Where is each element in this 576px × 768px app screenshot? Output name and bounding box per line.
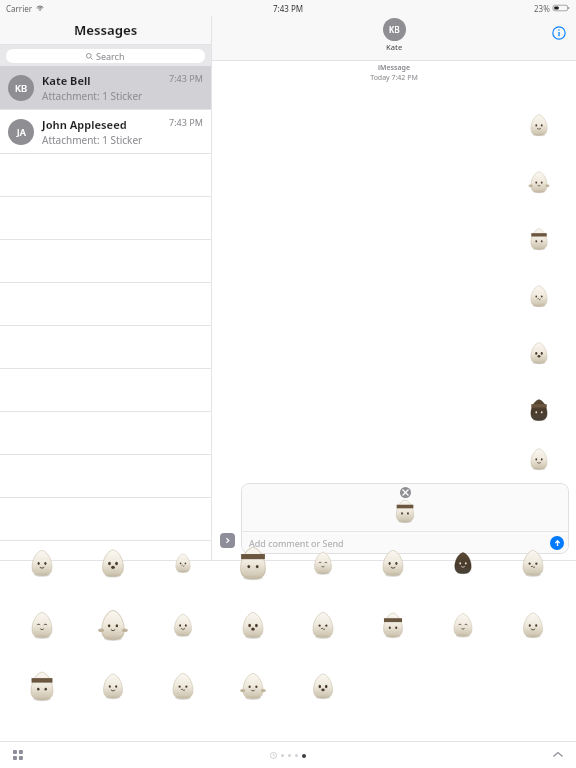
button[interactable]: Add comment or Send	[241, 532, 569, 554]
button[interactable]: Sticker	[235, 668, 271, 704]
button[interactable]: Sticker	[305, 607, 341, 643]
button[interactable]	[0, 455, 211, 498]
button[interactable]	[0, 240, 211, 283]
button[interactable]: KB	[0, 66, 211, 110]
staticText: 7:43 PM	[169, 72, 203, 84]
button[interactable]: Search	[6, 49, 205, 63]
staticText: John Appleseed	[42, 117, 127, 132]
button[interactable]: Sticker	[375, 545, 411, 581]
button[interactable]: Send	[550, 536, 564, 550]
button[interactable]: Remove sticker	[400, 487, 411, 498]
button[interactable]: JA	[0, 110, 211, 154]
staticText: 7:43 PM	[169, 116, 203, 128]
button[interactable]: Sticker	[24, 545, 60, 581]
button[interactable]: Sticker	[305, 668, 341, 704]
button[interactable]: Sticker	[235, 545, 271, 581]
button[interactable]	[0, 326, 211, 369]
button[interactable]	[526, 397, 576, 423]
button[interactable]	[526, 283, 576, 309]
button[interactable]: Sticker	[24, 668, 60, 704]
staticText: 7:43 PM	[273, 3, 304, 14]
staticText: Kate Bell	[42, 73, 91, 88]
staticText: KB	[15, 82, 28, 95]
staticText: 23%	[534, 3, 550, 14]
button[interactable]: Sticker	[515, 545, 551, 581]
staticText: Add comment or Send	[249, 537, 344, 549]
button[interactable]: Details	[550, 24, 568, 42]
staticText: KB	[389, 24, 400, 35]
button[interactable]	[0, 283, 211, 326]
staticText: Attachment: 1 Sticker	[42, 89, 143, 103]
button[interactable]: Sticker	[445, 607, 481, 643]
button[interactable]: KB	[383, 18, 406, 52]
button[interactable]	[0, 369, 211, 412]
staticText: Carrier	[6, 3, 33, 14]
staticText: JA	[17, 126, 26, 139]
button[interactable]	[526, 112, 576, 138]
button[interactable]: Sticker	[305, 545, 341, 581]
button[interactable]: Sticker	[235, 607, 271, 643]
button[interactable]	[526, 446, 576, 472]
button[interactable]: Sticker	[165, 607, 201, 643]
button[interactable]: Sticker	[95, 668, 131, 704]
button[interactable]: Sticker	[95, 607, 131, 643]
button[interactable]: Sticker	[375, 607, 411, 643]
button[interactable]	[0, 498, 211, 541]
button[interactable]: App drawer	[8, 745, 28, 765]
button[interactable]: Expand apps	[220, 533, 235, 548]
button[interactable]	[0, 197, 211, 240]
button[interactable]: Sticker	[95, 545, 131, 581]
button[interactable]: Sticker	[515, 607, 551, 643]
button[interactable]	[526, 340, 576, 366]
button[interactable]	[0, 154, 211, 197]
staticText: Today 7:42 PM	[212, 73, 576, 83]
button[interactable]: Sticker	[165, 545, 201, 581]
button[interactable]	[526, 226, 576, 252]
button[interactable]: Sticker	[24, 607, 60, 643]
staticText: Kate	[386, 42, 403, 52]
button[interactable]: Sticker	[165, 668, 201, 704]
button[interactable]: Sticker	[445, 545, 481, 581]
staticText: iMessage	[212, 63, 576, 73]
staticText: Search	[96, 50, 125, 62]
button[interactable]: Collapse	[548, 745, 568, 765]
button[interactable]	[526, 169, 576, 195]
button[interactable]	[0, 412, 211, 455]
staticText: Messages	[74, 21, 138, 39]
staticText: Attachment: 1 Sticker	[42, 133, 143, 147]
